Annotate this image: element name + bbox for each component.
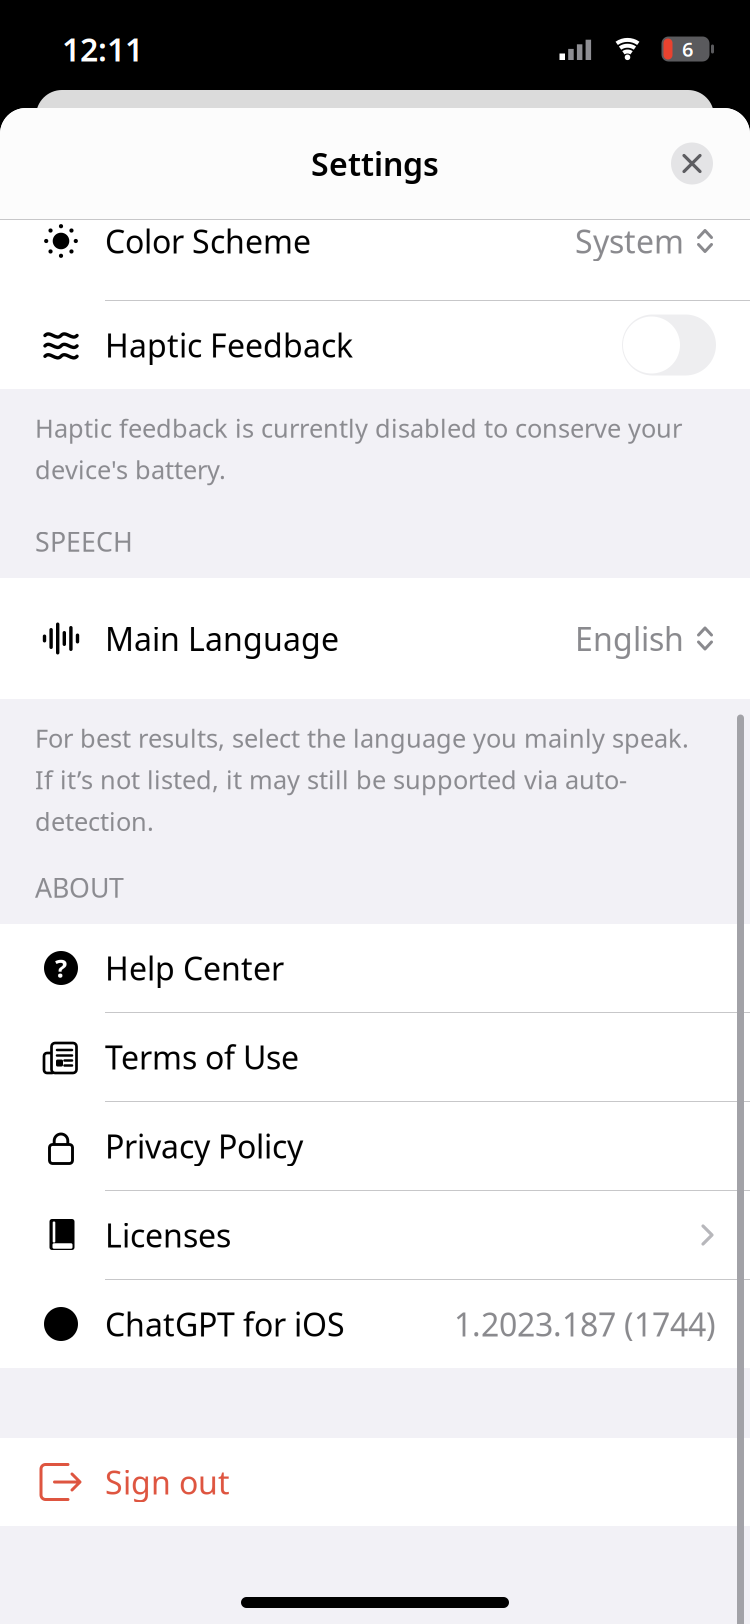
button[interactable]: Color Scheme [0,220,750,300]
staticText: Color Scheme [105,220,311,262]
staticText: English [575,617,684,660]
staticText: 12:11 [62,28,143,70]
staticText: Haptic Feedback [105,324,353,366]
staticText: ChatGPT for iOS [105,1303,345,1345]
button[interactable]: Terms of Use [0,1013,750,1101]
staticText: Privacy Policy [105,1125,303,1167]
button[interactable]: Close [662,133,722,193]
staticText: For best results, select the language yo… [35,721,689,838]
staticText: 6 [682,36,693,62]
button[interactable]: Main Language [0,578,750,699]
staticText: Haptic feedback is currently disabled to… [35,411,682,486]
button[interactable]: ? [0,924,750,1012]
staticText: ? [55,951,67,985]
staticText: Terms of Use [105,1036,299,1078]
button[interactable]: ChatGPT for iOS [0,1280,750,1368]
staticText: Help Center [105,947,284,989]
staticText: ABOUT [35,870,124,905]
staticText: Licenses [105,1214,231,1256]
button[interactable]: Haptic Feedback [622,314,716,375]
staticText: Main Language [105,617,339,660]
staticText: 1.2023.187 (1744) [454,1303,716,1345]
button[interactable]: Privacy Policy [0,1102,750,1190]
staticText: Sign out [105,1461,230,1503]
button[interactable]: Sign out [0,1438,750,1526]
staticText: System [575,220,684,262]
button[interactable]: Licenses [0,1191,750,1279]
staticText: Settings [311,142,439,185]
staticText: SPEECH [35,524,133,559]
button[interactable]: Haptic Feedback [0,301,750,389]
